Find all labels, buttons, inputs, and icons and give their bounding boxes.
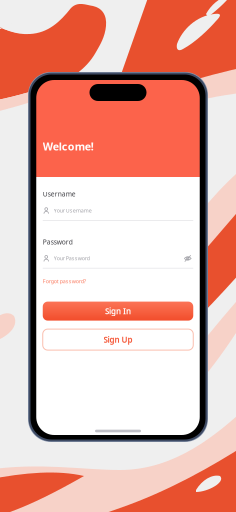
staticText: Sign In: [105, 306, 131, 316]
staticText: Welcome!: [43, 139, 94, 153]
staticText: Your Username: [54, 207, 92, 214]
button[interactable]: Sign Up: [43, 329, 193, 350]
staticText: Sign Up: [103, 334, 132, 345]
staticText: Forgot password?: [43, 278, 86, 285]
staticText: Password: [43, 237, 73, 246]
button[interactable]: Sign In: [43, 302, 193, 321]
staticText: Your Password: [54, 255, 90, 262]
staticText: Username: [43, 190, 76, 198]
button[interactable]: Show password: [182, 254, 193, 263]
button[interactable]: Forgot password?: [43, 278, 86, 285]
